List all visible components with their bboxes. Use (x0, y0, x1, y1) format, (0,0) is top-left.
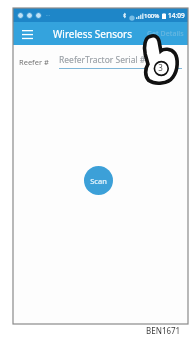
staticText: ··· (46, 12, 51, 19)
staticText: ReeferTractor Serial # (59, 54, 146, 66)
button[interactable]: Get Details (147, 29, 184, 39)
button[interactable]: Open navigation menu (19, 26, 35, 42)
button[interactable]: Scan (84, 166, 113, 195)
button[interactable]: ReeferTractor Serial # (59, 54, 182, 69)
staticText: 3 (158, 62, 163, 72)
staticText: Get Details (147, 29, 184, 39)
staticText: 14:09 (168, 11, 185, 20)
staticText: BEN1671 (146, 325, 181, 336)
staticText: 100% (144, 12, 160, 20)
staticText: Scan (90, 176, 107, 186)
staticText: Reefer # (19, 57, 49, 67)
staticText: Wireless Sensors (53, 27, 132, 41)
